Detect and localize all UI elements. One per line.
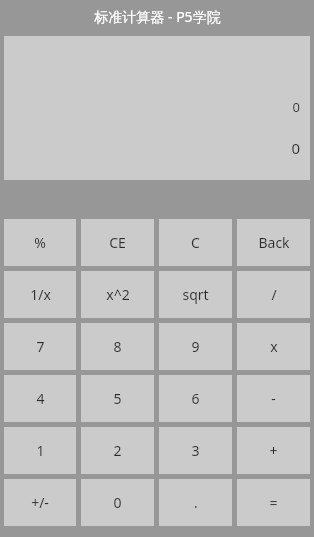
- staticText: 6: [191, 389, 200, 408]
- button[interactable]: sqrt: [159, 271, 232, 318]
- button[interactable]: +: [237, 427, 310, 474]
- staticText: 8: [113, 337, 122, 356]
- button[interactable]: 1/x: [4, 271, 76, 318]
- staticText: 5: [113, 389, 122, 408]
- button[interactable]: Back: [237, 219, 310, 266]
- staticText: 1: [36, 441, 45, 460]
- staticText: +: [269, 441, 278, 460]
- button[interactable]: 3: [159, 427, 232, 474]
- button[interactable]: 9: [159, 323, 232, 370]
- staticText: 7: [36, 337, 45, 356]
- staticText: 2: [113, 441, 122, 460]
- staticText: /: [271, 285, 277, 304]
- button[interactable]: 5: [81, 375, 154, 422]
- button[interactable]: 0: [81, 479, 154, 526]
- button[interactable]: 6: [159, 375, 232, 422]
- staticText: CE: [109, 233, 126, 252]
- button[interactable]: CE: [81, 219, 154, 266]
- staticText: 1/x: [30, 285, 51, 304]
- staticText: 9: [191, 337, 200, 356]
- staticText: 3: [191, 441, 200, 460]
- staticText: x: [270, 337, 278, 356]
- staticText: x^2: [106, 285, 130, 304]
- button[interactable]: x^2: [81, 271, 154, 318]
- staticText: 0: [291, 138, 300, 158]
- staticText: +/-: [31, 493, 49, 512]
- staticText: =: [269, 493, 278, 512]
- staticText: -: [271, 389, 276, 408]
- button[interactable]: -: [237, 375, 310, 422]
- button[interactable]: .: [159, 479, 232, 526]
- staticText: 4: [36, 389, 45, 408]
- staticText: .: [194, 493, 198, 512]
- button[interactable]: 2: [81, 427, 154, 474]
- staticText: 0: [292, 98, 300, 116]
- button[interactable]: =: [237, 479, 310, 526]
- button[interactable]: 1: [4, 427, 76, 474]
- button[interactable]: 7: [4, 323, 76, 370]
- button[interactable]: %: [4, 219, 76, 266]
- staticText: Back: [258, 233, 290, 252]
- button[interactable]: 8: [81, 323, 154, 370]
- button[interactable]: /: [237, 271, 310, 318]
- button[interactable]: x: [237, 323, 310, 370]
- staticText: 标准计算器 - P5学院: [94, 7, 221, 26]
- button[interactable]: +/-: [4, 479, 76, 526]
- button[interactable]: 4: [4, 375, 76, 422]
- staticText: C: [191, 233, 200, 252]
- staticText: sqrt: [182, 285, 209, 304]
- staticText: %: [34, 233, 46, 252]
- staticText: 0: [113, 493, 122, 512]
- button[interactable]: C: [159, 219, 232, 266]
